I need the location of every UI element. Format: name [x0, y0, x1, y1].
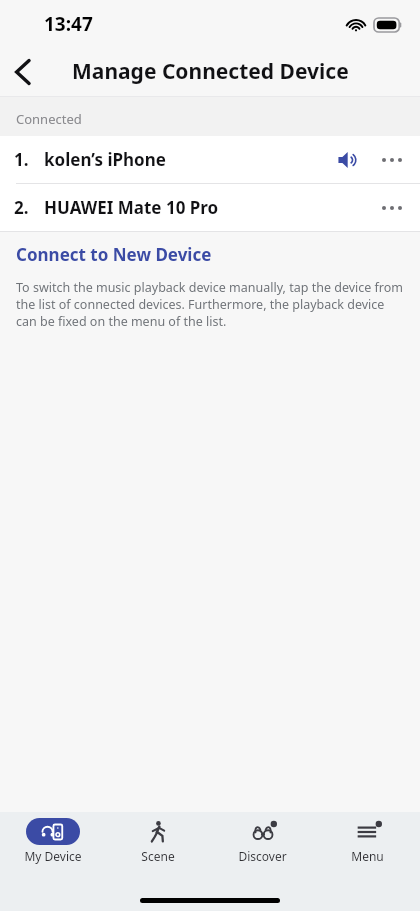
staticText: Discover: [238, 848, 287, 864]
button[interactable]: Back: [0, 49, 46, 95]
staticText: Scene: [141, 848, 175, 864]
button[interactable]: Discover: [210, 812, 315, 864]
staticText: My Device: [24, 848, 82, 864]
staticText: Connected: [16, 110, 82, 128]
other: Playing on this device: [332, 143, 366, 177]
staticText: Connect to New Device: [16, 243, 212, 266]
staticText: Manage Connected Device: [72, 57, 349, 86]
staticText: 13:47: [44, 11, 93, 37]
staticText: kolen’s iPhone: [44, 148, 166, 171]
staticText: Menu: [351, 848, 384, 864]
staticText: 2.: [14, 196, 44, 219]
staticText: To switch the music playback device manu…: [16, 279, 404, 330]
button[interactable]: More options: [370, 186, 414, 230]
button[interactable]: More options: [370, 138, 414, 182]
staticText: 1.: [14, 148, 44, 171]
button[interactable]: 1.: [0, 136, 420, 183]
button[interactable]: Connect to New Device: [0, 232, 420, 277]
button[interactable]: Scene: [105, 812, 210, 864]
staticText: HUAWEI Mate 10 Pro: [44, 196, 219, 219]
button[interactable]: 2.: [0, 184, 420, 231]
button[interactable]: Menu: [315, 812, 420, 864]
button[interactable]: My Device: [0, 812, 105, 864]
